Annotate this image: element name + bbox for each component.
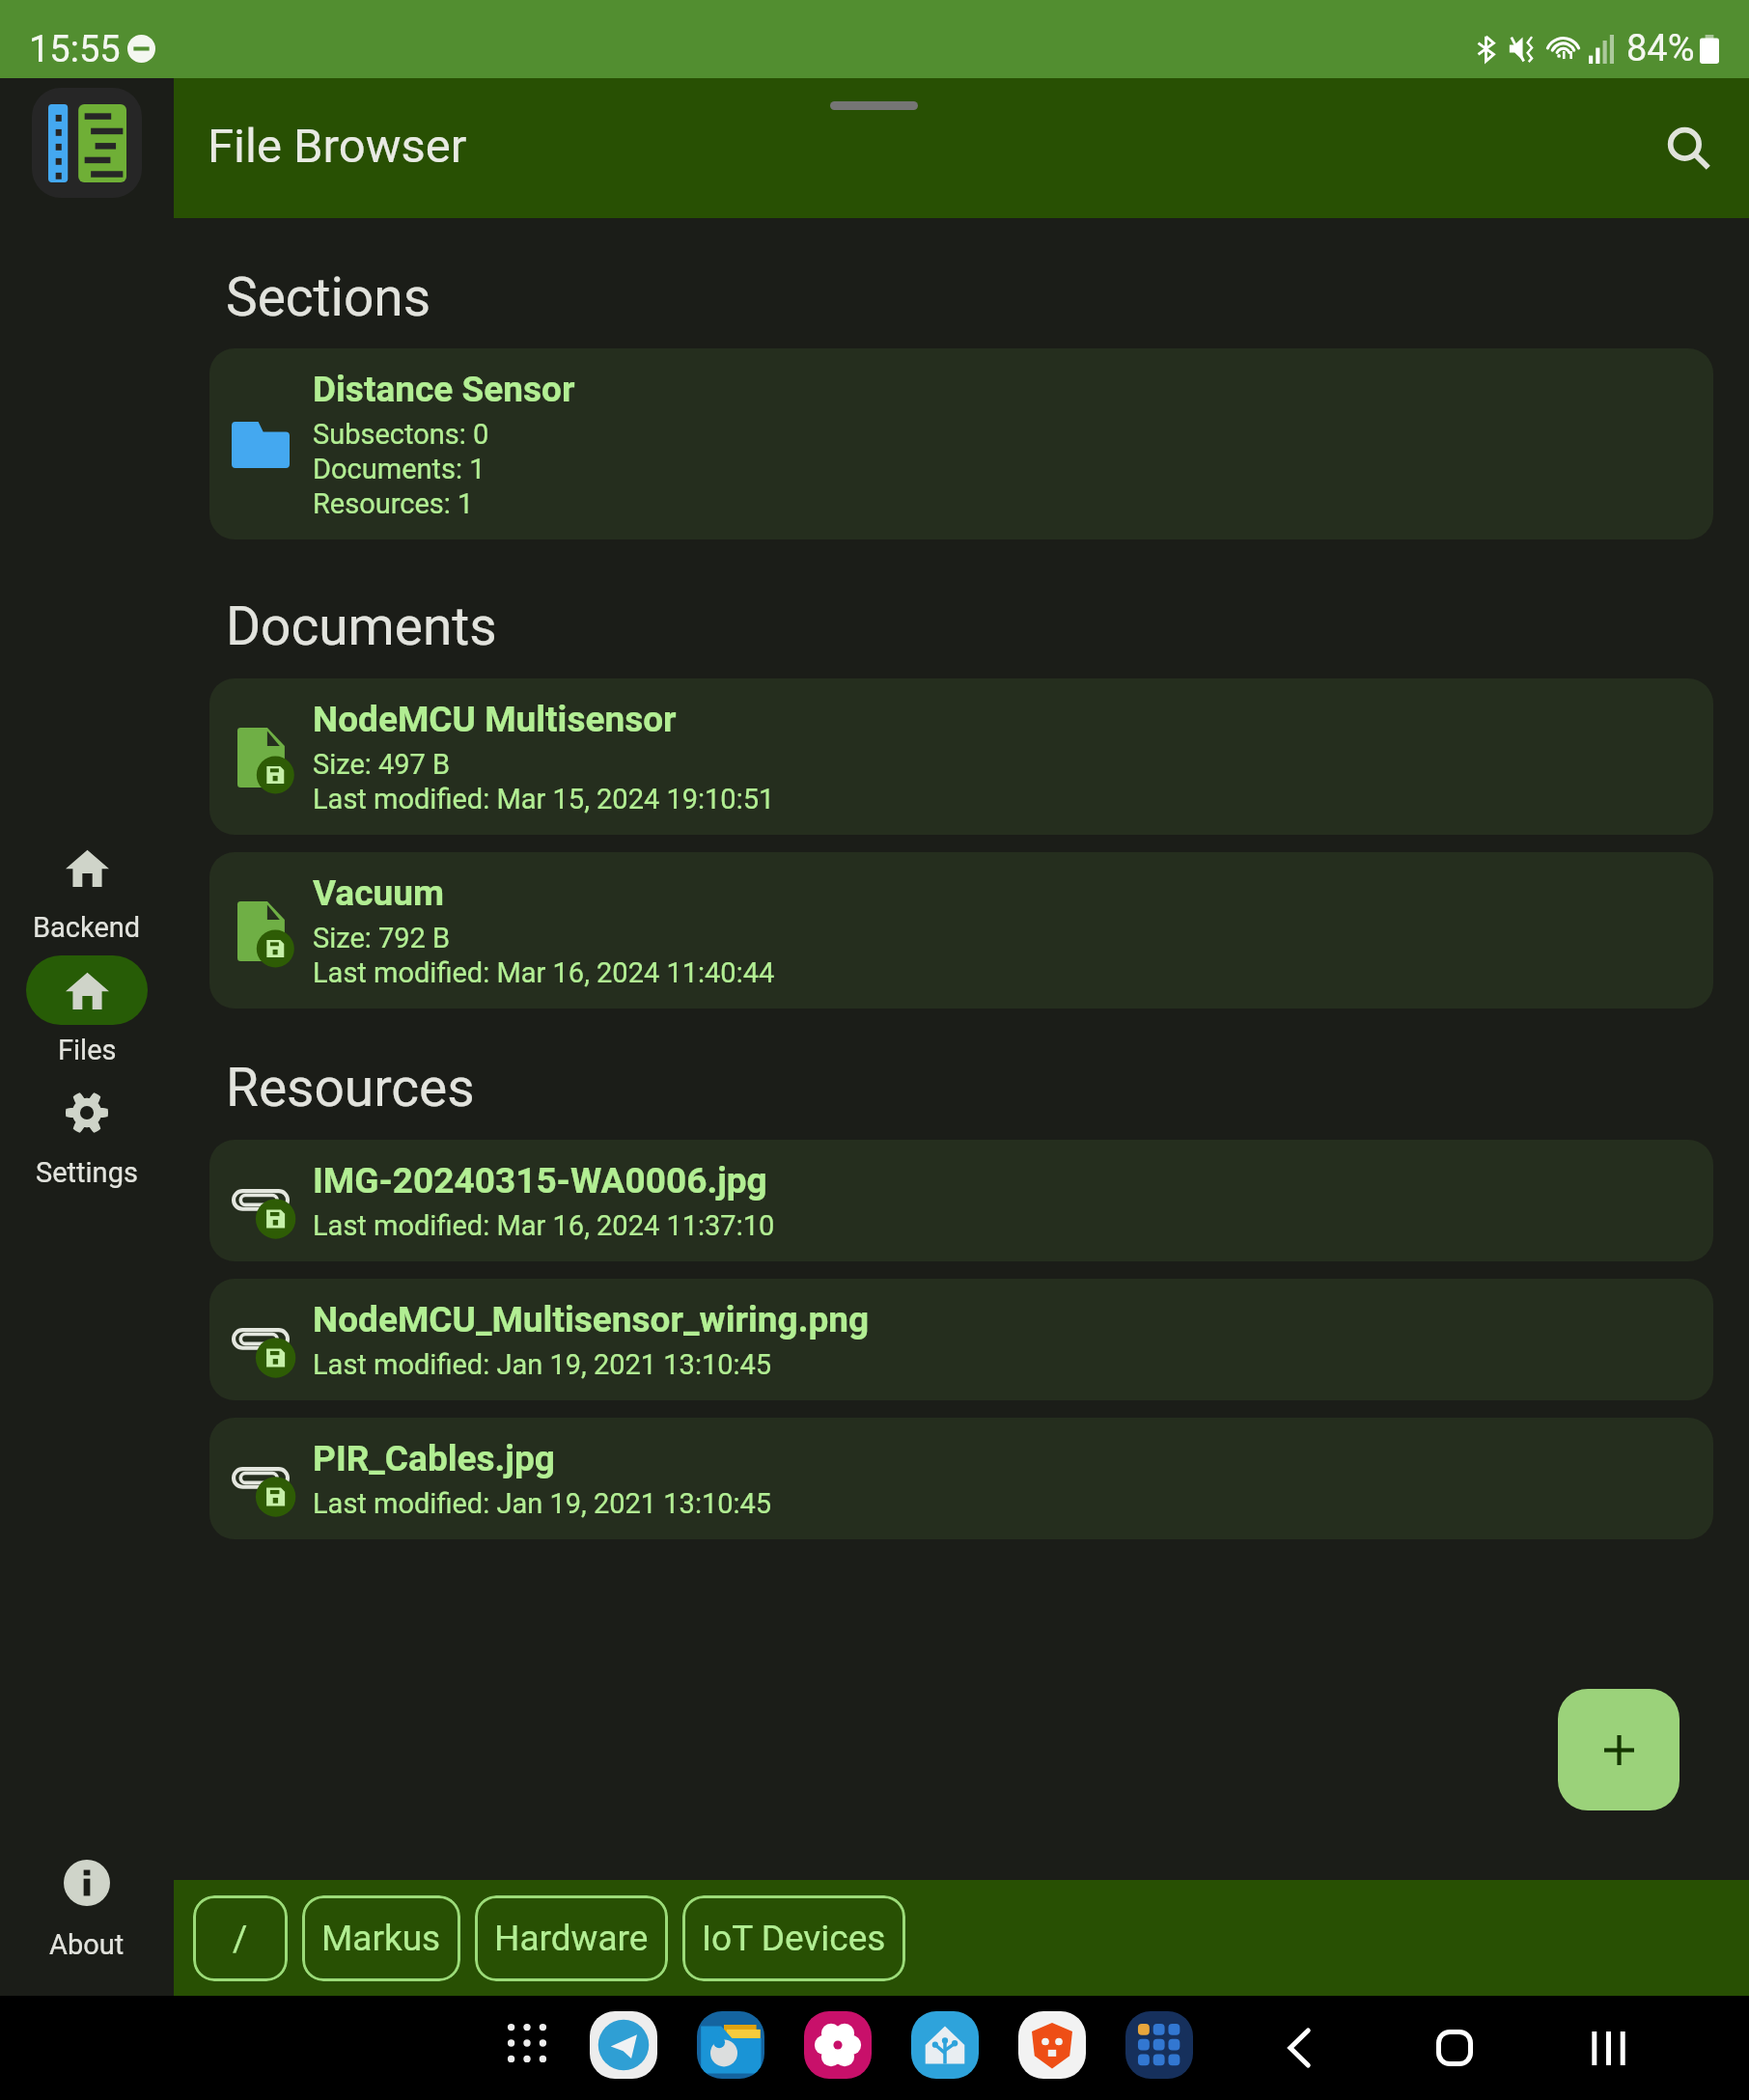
staticText: Documents — [226, 595, 497, 657]
staticText: About — [49, 1928, 125, 1961]
staticText: PIR_Cables.jpg — [313, 1438, 555, 1479]
button[interactable]: Vacuum — [209, 852, 1713, 1009]
staticText: Files — [58, 1034, 117, 1066]
button[interactable]: Settings — [26, 1078, 148, 1201]
staticText: Subsectons: 0 Documents: 1 Resources: 1 — [313, 418, 489, 520]
button[interactable]: All apps — [498, 2014, 556, 2072]
button[interactable]: NodeMCU Multisensor — [209, 678, 1713, 835]
button[interactable]: Add — [1558, 1689, 1680, 1810]
button[interactable]: Brave — [1018, 2011, 1086, 2079]
button[interactable]: / — [193, 1895, 288, 1981]
button[interactable]: App drawer — [1125, 2011, 1193, 2079]
staticText: NodeMCU_Multisensor_wiring.png — [313, 1299, 870, 1340]
button[interactable]: About — [49, 1860, 125, 1961]
button[interactable]: Telegram — [590, 2011, 657, 2079]
staticText: NodeMCU Multisensor — [313, 699, 677, 740]
button[interactable]: Backend — [26, 833, 148, 955]
button[interactable]: Home Assistant — [911, 2011, 979, 2079]
button[interactable]: Hardware — [475, 1895, 668, 1981]
button[interactable]: File Browser app icon — [32, 88, 142, 198]
staticText: Markus — [321, 1918, 441, 1959]
staticText: IoT Devices — [702, 1918, 886, 1959]
staticText: Last modified: Jan 19, 2021 13:10:45 — [313, 1348, 772, 1381]
button[interactable]: Gallery — [804, 2011, 872, 2079]
button[interactable]: Back — [1265, 2014, 1333, 2082]
staticText: Size: 792 B Last modified: Mar 16, 2024 … — [313, 922, 775, 989]
button[interactable]: Distance Sensor — [209, 348, 1713, 539]
staticText: IMG-20240315-WA0006.jpg — [313, 1160, 767, 1202]
staticText: 15:55 — [29, 28, 121, 71]
button[interactable]: Files — [26, 955, 148, 1078]
staticText: / — [233, 1918, 248, 1959]
staticText: Sections — [226, 266, 431, 328]
button[interactable]: IoT Devices — [682, 1895, 905, 1981]
button[interactable]: NodeMCU_Multisensor_wiring.png — [209, 1279, 1713, 1400]
button[interactable]: Markus — [302, 1895, 460, 1981]
button[interactable]: Files — [697, 2011, 764, 2079]
staticText: Backend — [33, 911, 141, 944]
button[interactable]: Search — [1657, 117, 1721, 180]
button[interactable]: PIR_Cables.jpg — [209, 1418, 1713, 1539]
staticText: Size: 497 B Last modified: Mar 15, 2024 … — [313, 748, 775, 815]
button[interactable]: Recents — [1574, 2014, 1642, 2082]
staticText: File Browser — [208, 119, 467, 174]
staticText: Vacuum — [313, 872, 444, 914]
button[interactable]: IMG-20240315-WA0006.jpg — [209, 1140, 1713, 1261]
staticText: Distance Sensor — [313, 369, 575, 410]
staticText: Last modified: Mar 16, 2024 11:37:10 — [313, 1209, 775, 1242]
staticText: Hardware — [494, 1918, 649, 1959]
staticText: 84% — [1626, 27, 1695, 70]
button[interactable]: Home — [1421, 2014, 1488, 2082]
staticText: Settings — [36, 1156, 138, 1189]
staticText: Last modified: Jan 19, 2021 13:10:45 — [313, 1487, 772, 1520]
staticText: Resources — [226, 1057, 475, 1119]
